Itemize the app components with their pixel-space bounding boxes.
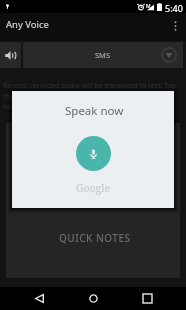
button[interactable]: Home [74, 287, 112, 310]
button[interactable]: More options [164, 13, 186, 38]
button[interactable]: Microphone [76, 136, 111, 171]
staticText: Any Voice [6, 18, 49, 31]
staticText: QUICK NOTES [59, 231, 131, 245]
staticText: 5:40 [165, 2, 183, 14]
staticText: SMS [95, 50, 111, 60]
button[interactable]: Recents [128, 287, 166, 310]
button[interactable]: SMS [23, 42, 183, 68]
staticText: Google [76, 181, 111, 195]
button[interactable]: Back [20, 287, 58, 310]
staticText: M [146, 3, 151, 10]
staticText: Speak now [65, 103, 124, 119]
button[interactable]: Speaker [0, 42, 21, 68]
staticText: Record: recorded audio will be translate… [3, 81, 183, 111]
button[interactable]: Expand [161, 47, 177, 63]
